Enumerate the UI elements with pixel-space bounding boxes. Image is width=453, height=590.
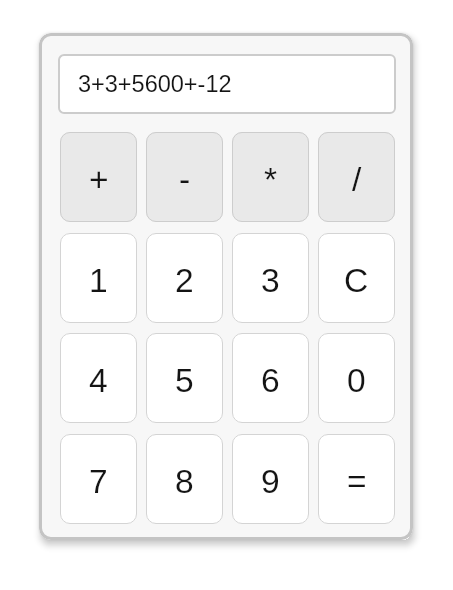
button[interactable]: 1 [60, 233, 137, 323]
staticText: 3 [261, 262, 280, 299]
staticText: + [89, 161, 109, 198]
staticText: 2 [175, 262, 194, 299]
staticText: / [352, 161, 362, 198]
button[interactable]: 0 [318, 333, 395, 423]
button[interactable]: * [232, 132, 309, 222]
button[interactable]: / [318, 132, 395, 222]
staticText: 6 [261, 362, 280, 399]
staticText: 4 [89, 362, 108, 399]
staticText: 3+3+5600+-12 [78, 71, 232, 97]
button[interactable]: 6 [232, 333, 309, 423]
staticText: 9 [261, 463, 280, 500]
button[interactable]: - [146, 132, 223, 222]
button[interactable]: 2 [146, 233, 223, 323]
staticText: 7 [89, 463, 108, 500]
staticText: C [344, 262, 369, 299]
button[interactable]: = [318, 434, 395, 524]
button[interactable]: 4 [60, 333, 137, 423]
button[interactable]: 5 [146, 333, 223, 423]
staticText: * [264, 161, 278, 198]
button[interactable]: 3 [232, 233, 309, 323]
staticText: 5 [175, 362, 194, 399]
button[interactable]: 9 [232, 434, 309, 524]
staticText: 8 [175, 463, 194, 500]
button[interactable]: 7 [60, 434, 137, 524]
staticText: 1 [89, 262, 108, 299]
button[interactable]: C [318, 233, 395, 323]
button[interactable]: 8 [146, 434, 223, 524]
staticText: - [179, 161, 191, 198]
staticText: = [347, 463, 367, 500]
button[interactable]: 3+3+5600+-12 [58, 54, 396, 114]
button[interactable]: + [60, 132, 137, 222]
staticText: 0 [347, 362, 366, 399]
